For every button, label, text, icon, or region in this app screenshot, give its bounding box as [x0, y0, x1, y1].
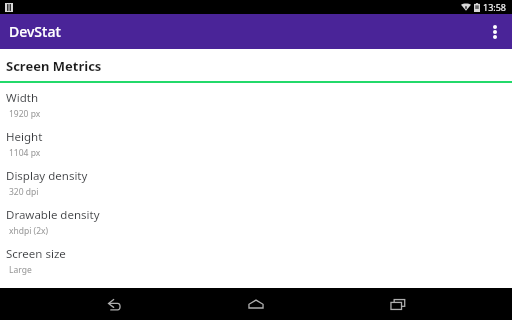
button[interactable]: Screen size — [0, 239, 512, 278]
staticText: xhdpi (2x) — [9, 225, 49, 237]
staticText: Height — [6, 129, 43, 145]
staticText: Drawable density — [6, 207, 100, 223]
button[interactable]: More options — [478, 14, 512, 49]
staticText: 1104 px — [9, 147, 41, 159]
staticText: Display density — [6, 168, 88, 184]
staticText: Screen size — [6, 246, 66, 262]
button[interactable]: Back — [86, 288, 142, 320]
staticText: DevStat — [9, 22, 61, 41]
staticText: 13:58 — [483, 1, 507, 13]
button[interactable]: Home — [228, 288, 284, 320]
button[interactable]: Drawable density — [0, 200, 512, 239]
staticText: Large — [9, 264, 32, 276]
staticText: Screen Metrics — [6, 57, 102, 75]
button[interactable]: Display density — [0, 161, 512, 200]
staticText: Width — [6, 90, 38, 106]
button[interactable]: Height — [0, 122, 512, 161]
staticText: 1920 px — [9, 108, 41, 120]
staticText: 320 dpi — [9, 186, 39, 198]
button[interactable]: Width — [0, 83, 512, 122]
button[interactable]: Recent apps — [370, 288, 426, 320]
